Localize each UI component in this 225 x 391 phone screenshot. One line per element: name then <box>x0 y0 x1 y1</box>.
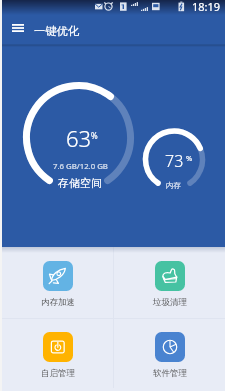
staticText: 垃圾清理 <box>153 297 187 308</box>
staticText: 一键优化 <box>34 24 80 38</box>
button[interactable]: 垃圾清理 <box>114 247 225 318</box>
button[interactable]: 软件管理 <box>114 318 225 389</box>
staticText: 软件管理 <box>153 368 187 379</box>
button[interactable]: 自启管理 <box>2 318 113 389</box>
staticText: % <box>91 130 98 141</box>
staticText: 63 <box>66 123 92 153</box>
staticText: 内存 <box>166 181 181 190</box>
staticText: 18:19 <box>192 0 221 14</box>
staticText: % <box>186 153 193 163</box>
staticText: 存储空间 <box>58 176 102 190</box>
staticText: 7.6 GB/12.0 GB <box>53 161 108 172</box>
staticText: 内存加速 <box>41 297 75 308</box>
staticText: 73 <box>165 150 184 172</box>
button[interactable]: 内存加速 <box>2 247 113 318</box>
staticText: 自启管理 <box>41 368 75 379</box>
button[interactable]: Menu <box>6 16 30 40</box>
